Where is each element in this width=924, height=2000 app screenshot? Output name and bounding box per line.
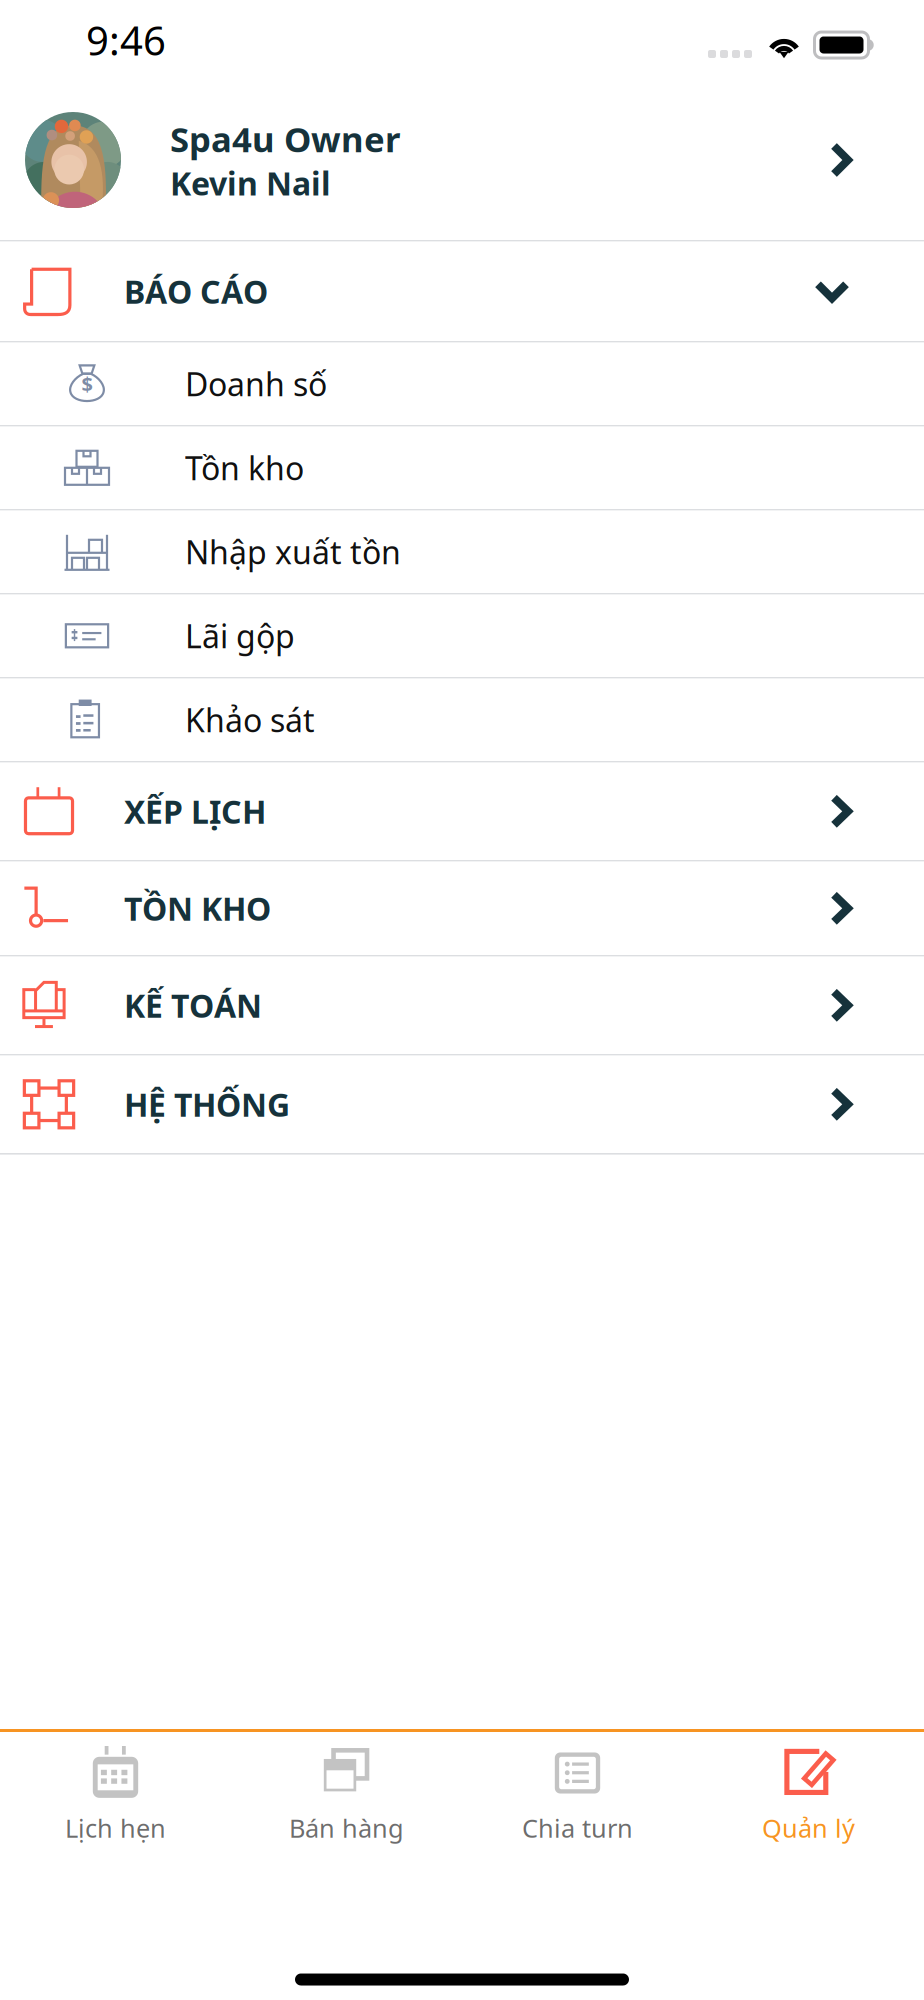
staticText: XẾP LỊCH: [124, 790, 266, 833]
staticText: BÁO CÁO: [124, 270, 268, 313]
staticText: 9:46: [86, 13, 166, 66]
staticText: KẾ TOÁN: [124, 984, 262, 1027]
staticText: Lãi gộp: [185, 615, 295, 657]
staticText: Tồn kho: [185, 447, 304, 489]
button[interactable]: Lịch hẹn: [0, 1732, 231, 1857]
staticText: Khảo sát: [185, 699, 315, 741]
button[interactable]: $: [0, 343, 924, 425]
staticText: $: [81, 370, 92, 397]
button[interactable]: Tồn kho: [0, 427, 924, 509]
button[interactable]: TỒN KHO: [0, 862, 924, 955]
button[interactable]: XẾP LỊCH: [0, 763, 924, 860]
button[interactable]: BÁO CÁO: [0, 242, 924, 341]
staticText: Quản lý: [762, 1811, 855, 1845]
button[interactable]: Spa4u Owner: [0, 80, 924, 240]
button[interactable]: Nhập xuất tồn: [0, 511, 924, 593]
button[interactable]: Lãi gộp: [0, 595, 924, 677]
button[interactable]: Chia turn: [462, 1732, 693, 1857]
staticText: Lịch hẹn: [65, 1811, 166, 1845]
button[interactable]: HỆ THỐNG: [0, 1056, 924, 1153]
staticText: TỒN KHO: [124, 887, 271, 930]
staticText: Spa4u Owner: [170, 116, 400, 162]
button[interactable]: Quản lý: [693, 1732, 924, 1857]
button[interactable]: KẾ TOÁN: [0, 957, 924, 1054]
staticText: HỆ THỐNG: [124, 1083, 290, 1126]
staticText: Kevin Nail: [170, 162, 331, 204]
button[interactable]: Bán hàng: [231, 1732, 462, 1857]
staticText: Nhập xuất tồn: [185, 531, 401, 573]
staticText: Chia turn: [522, 1811, 633, 1845]
staticText: Bán hàng: [289, 1811, 404, 1845]
button[interactable]: Khảo sát: [0, 679, 924, 761]
staticText: Doanh số: [185, 363, 327, 405]
